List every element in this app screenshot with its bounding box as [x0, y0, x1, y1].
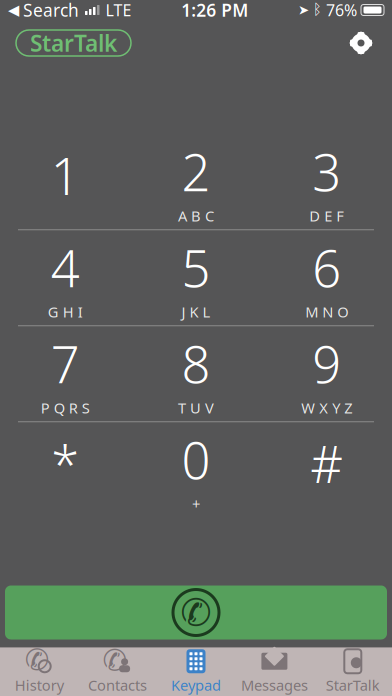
staticText: J K L — [181, 302, 210, 322]
staticText: 5 — [181, 234, 210, 301]
staticText: 7 — [51, 330, 80, 397]
staticText: 1 — [51, 142, 80, 209]
staticText: Search — [23, 0, 79, 21]
staticText: LTE — [105, 0, 131, 21]
button[interactable]: ✆ — [0, 648, 78, 696]
staticText: 0 — [181, 426, 210, 493]
button[interactable]: 7 — [0, 326, 131, 421]
staticText: G H I — [48, 302, 83, 322]
staticText: 6 — [312, 234, 341, 301]
button[interactable]: 1 — [0, 134, 131, 229]
staticText: P Q R S — [41, 398, 90, 418]
staticText: # — [310, 430, 343, 497]
staticText: W X Y Z — [301, 398, 352, 418]
staticText: + — [192, 494, 200, 514]
staticText: StarTalk — [326, 675, 380, 695]
staticText: Messages — [241, 675, 308, 695]
staticText: D E F — [309, 206, 344, 226]
staticText: 1:26 PM — [181, 0, 248, 21]
button[interactable]: 0 — [131, 422, 261, 517]
button[interactable]: 6 — [261, 230, 392, 325]
button[interactable]: 2 — [131, 134, 261, 229]
button[interactable]: 8 — [131, 326, 261, 421]
button[interactable]: Call — [5, 585, 387, 639]
staticText: ➤ — [298, 2, 309, 17]
button[interactable]: StarTalk — [314, 648, 392, 696]
staticText: ✆ — [103, 644, 128, 677]
staticText: Keypad — [171, 675, 221, 695]
staticText: M N O — [305, 302, 348, 322]
staticText: T U V — [178, 398, 214, 418]
staticText: ✆ — [25, 643, 50, 676]
button[interactable]: 4 — [0, 230, 131, 325]
button[interactable]: Settings — [344, 26, 378, 60]
staticText: * — [51, 430, 79, 497]
staticText: 76% — [326, 0, 357, 21]
staticText: 9 — [312, 330, 341, 397]
staticText: StarTalk — [30, 28, 117, 58]
staticText: 2 — [181, 138, 210, 205]
staticText: 4 — [51, 234, 80, 301]
button[interactable]: ✆ — [78, 648, 157, 696]
button[interactable]: 3 — [261, 134, 392, 229]
button[interactable]: 9 — [261, 326, 392, 421]
button[interactable]: 5 — [131, 230, 261, 325]
staticText: A B C — [178, 206, 214, 226]
staticText: 3 — [312, 138, 341, 205]
staticText: ◀ — [8, 2, 19, 18]
button[interactable]: # — [261, 422, 392, 517]
staticText: History — [15, 675, 64, 695]
button[interactable]: Keypad — [157, 648, 235, 696]
button[interactable]: ✕ — [235, 648, 314, 696]
button[interactable]: StarTalk — [16, 30, 131, 56]
button[interactable]: * — [0, 422, 131, 517]
staticText: ✆ — [180, 591, 211, 634]
staticText: ᛒ — [313, 3, 322, 17]
staticText: Contacts — [88, 675, 147, 695]
staticText: 8 — [181, 330, 210, 397]
